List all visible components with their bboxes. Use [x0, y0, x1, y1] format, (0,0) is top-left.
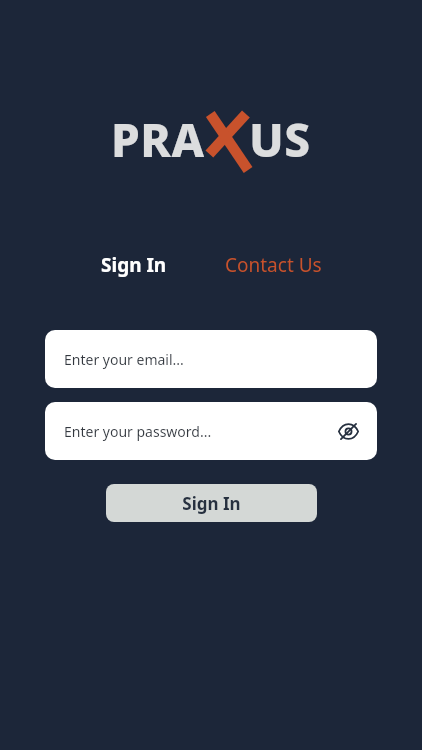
button[interactable]: Sign In	[93, 246, 175, 284]
staticText: Enter your password...	[64, 422, 212, 441]
button[interactable]: Sign In	[106, 484, 317, 522]
staticText: Enter your email...	[64, 350, 184, 369]
button[interactable]: Contact Us	[217, 246, 330, 284]
button[interactable]: Enter your password...	[45, 402, 377, 460]
staticText: Contact Us	[225, 252, 322, 278]
staticText: Sign In	[182, 492, 241, 515]
staticText: US	[249, 108, 311, 171]
staticText: PRA	[111, 108, 205, 171]
button[interactable]: Enter your email...	[45, 330, 377, 388]
staticText: Sign In	[101, 252, 167, 278]
button[interactable]: Show password	[331, 414, 365, 448]
